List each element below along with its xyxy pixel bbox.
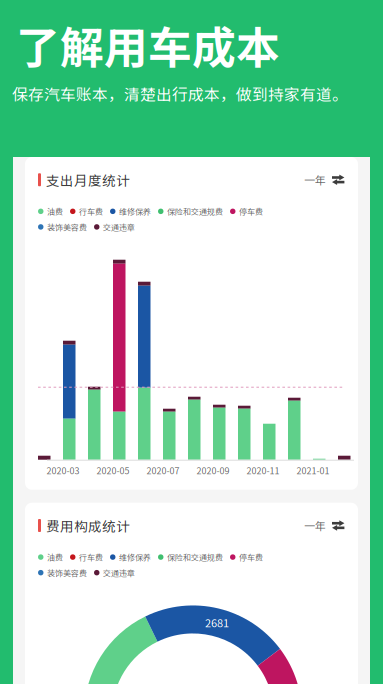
- staticText: 装饰美容费: [47, 221, 87, 233]
- staticText: 2020-09: [196, 464, 229, 477]
- staticText: 2681: [205, 614, 229, 630]
- staticText: 了解用车成本: [16, 13, 280, 76]
- staticText: 费用构成统计: [46, 516, 130, 535]
- staticText: 油费: [47, 551, 63, 563]
- staticText: 油费: [47, 205, 63, 217]
- staticText: 保存汽车账本，清楚出行成本，做到持家有道。: [12, 82, 348, 105]
- staticText: 停车费: [239, 205, 263, 217]
- staticText: 2021-01: [296, 464, 329, 477]
- staticText: 停车费: [239, 551, 263, 563]
- staticText: 维修保养: [119, 205, 151, 217]
- staticText: 行车费: [79, 205, 103, 217]
- staticText: 2020-07: [146, 464, 179, 477]
- staticText: 行车费: [79, 551, 103, 563]
- staticText: 装饰美容费: [47, 567, 87, 578]
- button[interactable]: 切换一年: [304, 172, 345, 188]
- staticText: 维修保养: [119, 551, 151, 563]
- staticText: 保险和交通规费: [167, 205, 223, 217]
- staticText: 一年: [304, 172, 326, 188]
- staticText: 交通违章: [103, 221, 135, 233]
- button[interactable]: 切换一年: [304, 518, 345, 533]
- staticText: 保险和交通规费: [167, 551, 223, 563]
- staticText: 2020-03: [46, 464, 79, 477]
- staticText: 支出月度统计: [46, 170, 130, 189]
- staticText: 一年: [304, 518, 326, 533]
- staticText: 交通违章: [103, 567, 135, 578]
- staticText: 2020-11: [246, 464, 279, 477]
- staticText: 2020-05: [96, 464, 129, 477]
